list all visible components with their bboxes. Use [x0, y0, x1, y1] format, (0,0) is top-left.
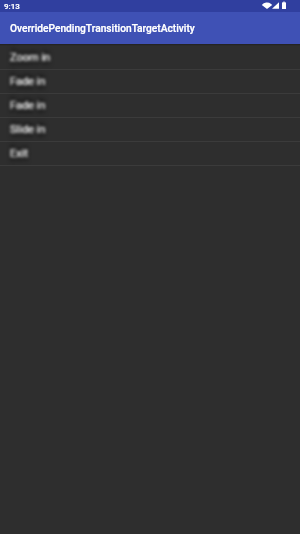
staticText: Fade in: [10, 99, 46, 112]
button[interactable]: Zoom in: [0, 46, 300, 69]
staticText: Fade in: [10, 95, 46, 108]
staticText: Fade in: [10, 79, 46, 92]
staticText: Exit: [10, 143, 28, 156]
staticText: Slide in: [10, 127, 46, 140]
staticText: Slide in: [10, 123, 46, 136]
staticText: Exit: [10, 147, 28, 160]
staticText: Fade in: [10, 75, 46, 88]
staticText: 9:13: [4, 2, 20, 11]
staticText: Zoom in: [10, 47, 51, 60]
button[interactable]: Fade in: [0, 70, 300, 93]
staticText: Exit: [10, 151, 28, 164]
staticText: Zoom in: [10, 55, 51, 68]
staticText: Zoom in: [10, 51, 51, 64]
staticText: OverridePendingTransitionTargetActivity: [10, 23, 195, 35]
staticText: Slide in: [10, 119, 46, 132]
button[interactable]: Fade in: [0, 94, 300, 117]
staticText: Fade in: [10, 103, 46, 116]
staticText: Fade in: [10, 71, 46, 84]
button[interactable]: Exit: [0, 142, 300, 165]
button[interactable]: Slide in: [0, 118, 300, 141]
